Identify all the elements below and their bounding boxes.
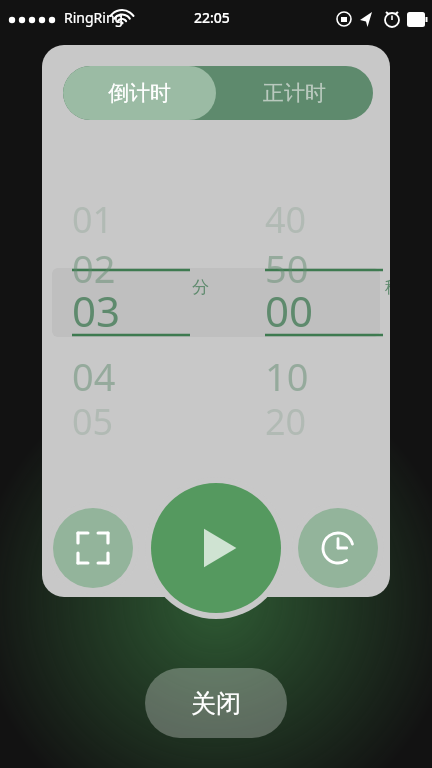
staticText: 05 xyxy=(72,397,114,443)
button[interactable]: 03 xyxy=(72,282,190,328)
staticText: 00 xyxy=(265,282,314,328)
button[interactable]: Start xyxy=(145,477,287,619)
button[interactable]: 00 xyxy=(265,282,383,328)
staticText: 倒计时 xyxy=(108,80,171,106)
staticText: 50 xyxy=(265,242,309,288)
button[interactable]: 50 xyxy=(265,242,383,288)
button[interactable]: 05 xyxy=(72,397,190,443)
staticText: 04 xyxy=(72,350,116,396)
staticText: RingRing xyxy=(64,8,124,27)
staticText: 正计时 xyxy=(263,80,326,106)
button[interactable]: 01 xyxy=(72,195,190,241)
button[interactable]: History xyxy=(292,502,384,594)
staticText: 分 xyxy=(192,277,209,298)
button[interactable]: 关闭 xyxy=(145,668,287,738)
staticText: 20 xyxy=(265,397,307,443)
button[interactable]: 10 xyxy=(265,350,383,396)
staticText: 秒 xyxy=(385,277,390,298)
staticText: 22:05 xyxy=(194,8,230,27)
staticText: 10 xyxy=(265,350,309,396)
staticText: 01 xyxy=(72,195,114,241)
button[interactable]: 40 xyxy=(265,195,383,241)
staticText: 02 xyxy=(72,242,116,288)
staticText: 40 xyxy=(265,195,307,241)
button[interactable]: 04 xyxy=(72,350,190,396)
button[interactable]: 倒计时 xyxy=(63,66,216,120)
staticText: 03 xyxy=(72,282,121,328)
button[interactable]: 20 xyxy=(265,397,383,443)
button[interactable]: 02 xyxy=(72,242,190,288)
button[interactable]: 正计时 xyxy=(216,66,373,120)
staticText: 关闭 xyxy=(191,688,241,719)
button[interactable]: Crop xyxy=(47,502,139,594)
